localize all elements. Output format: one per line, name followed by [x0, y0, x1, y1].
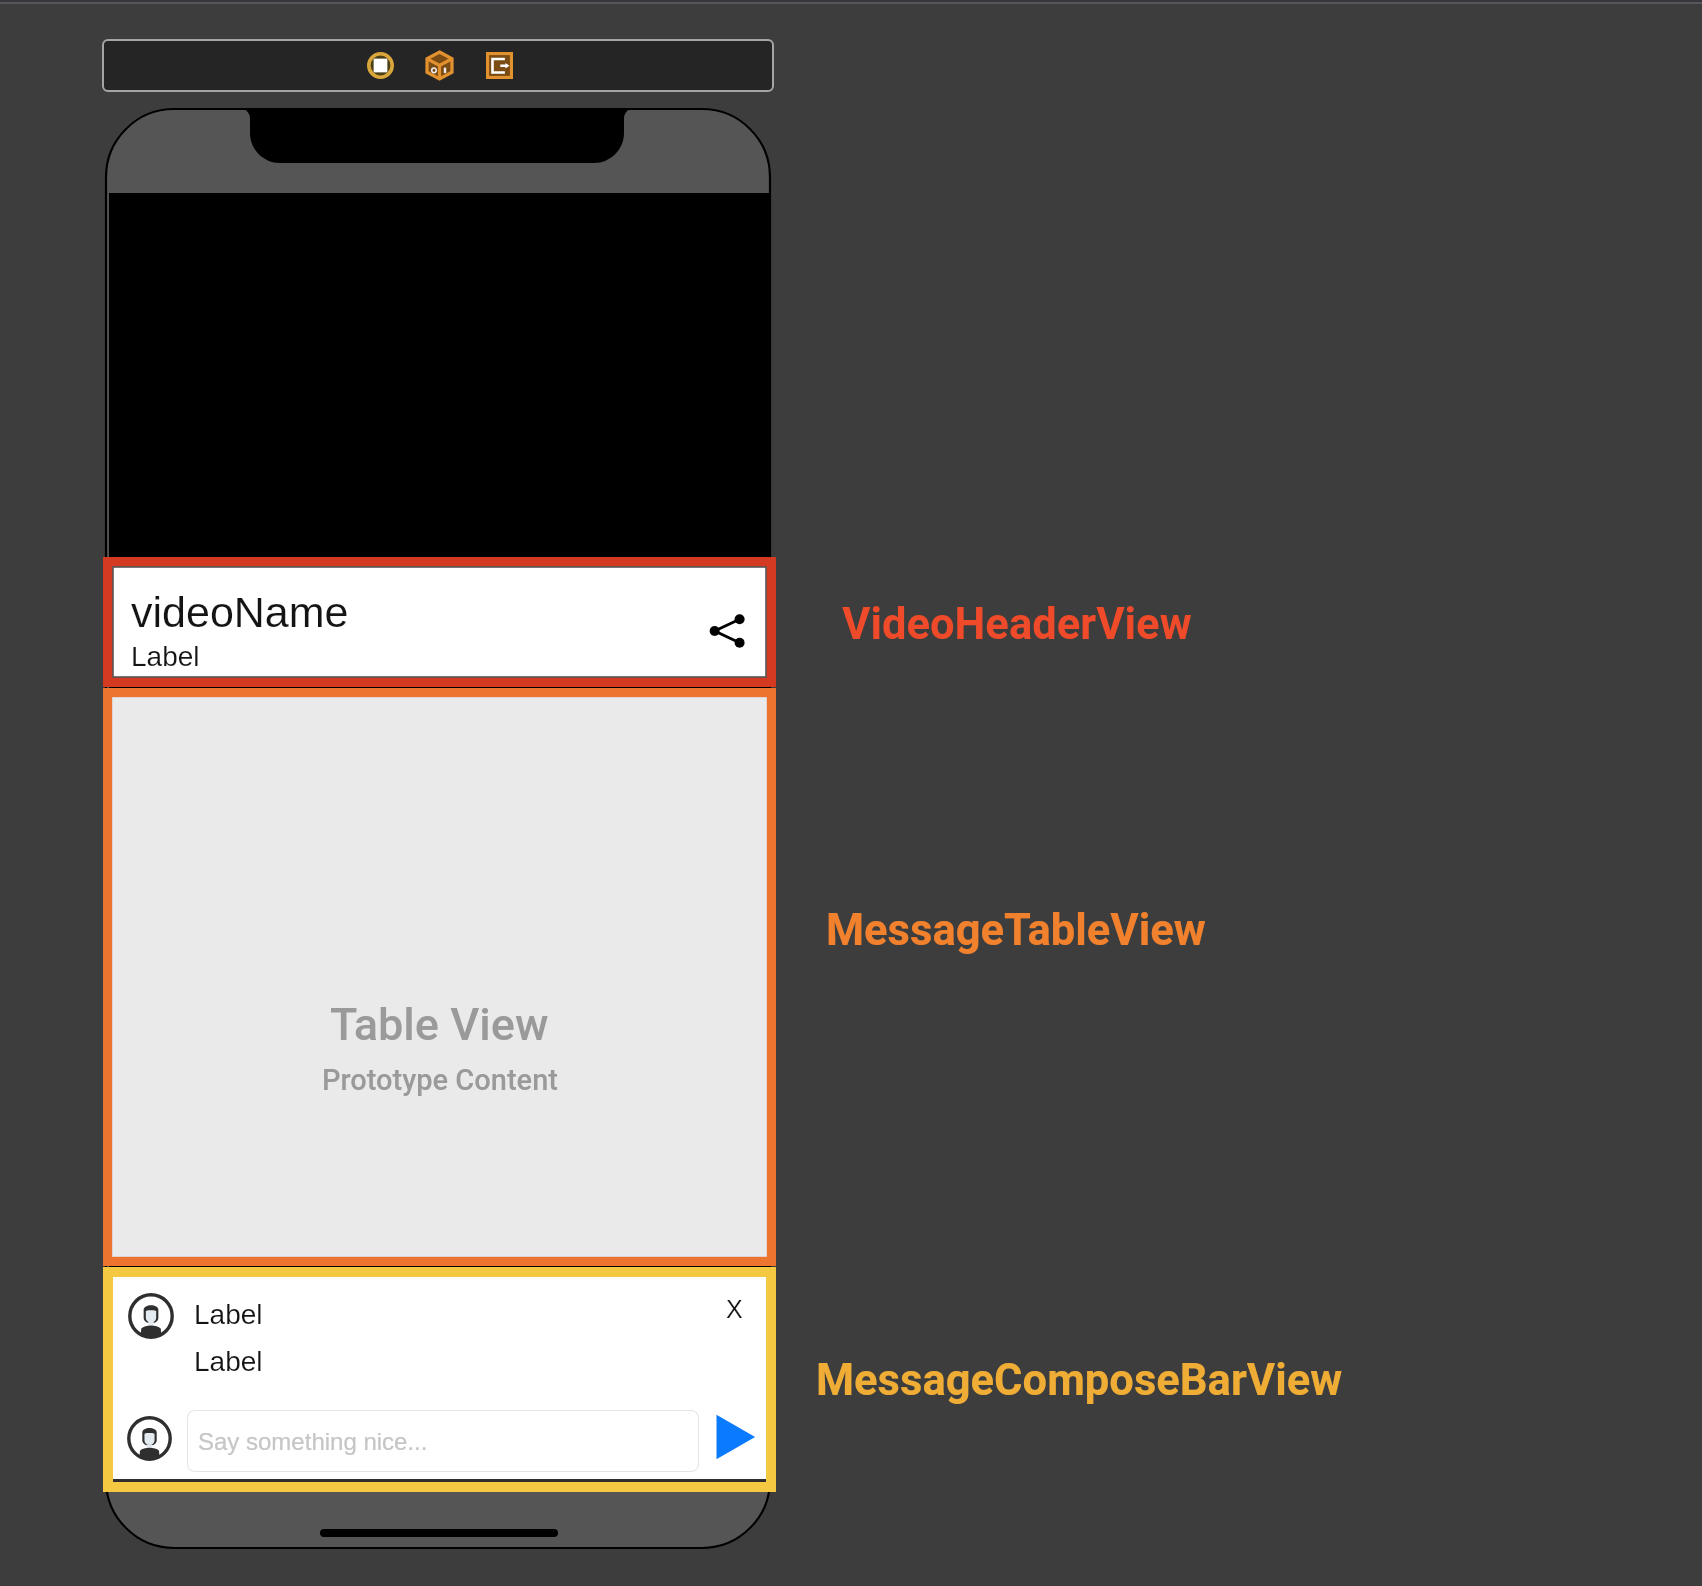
- button[interactable]: View controller: [367, 52, 394, 79]
- staticText: VideoHeaderView: [842, 599, 1192, 650]
- staticText: X: [726, 1295, 743, 1323]
- staticText: MessageComposeBarView: [816, 1355, 1343, 1406]
- staticText: MessageTableView: [826, 905, 1206, 956]
- staticText: videoName: [131, 588, 349, 636]
- staticText: Table View: [330, 998, 549, 1051]
- button[interactable]: Exit: [486, 52, 513, 79]
- staticText: Say something nice...: [198, 1428, 428, 1455]
- staticText: Label: [194, 1346, 263, 1377]
- button[interactable]: Close: [712, 1287, 756, 1331]
- button[interactable]: Share: [706, 607, 754, 655]
- button[interactable]: Send: [715, 1413, 757, 1461]
- button[interactable]: Message input field: [187, 1410, 699, 1472]
- button[interactable]: First responder: [427, 52, 452, 79]
- staticText: Prototype Content: [322, 1063, 558, 1097]
- staticText: Label: [194, 1299, 263, 1330]
- staticText: Label: [131, 641, 200, 672]
